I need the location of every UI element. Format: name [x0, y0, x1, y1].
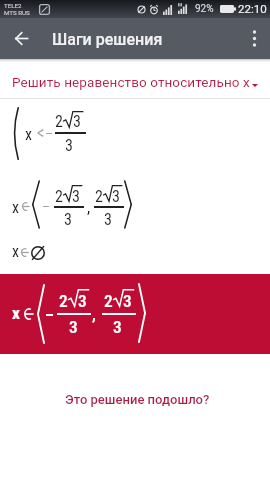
button[interactable]	[238, 20, 270, 57]
staticText: x	[12, 242, 20, 261]
staticText: 3	[112, 187, 120, 206]
staticText: 2	[95, 187, 103, 206]
staticText: TELE2	[4, 2, 22, 9]
staticText: 3	[78, 291, 87, 311]
staticText: 3	[104, 210, 112, 229]
staticText: MTS RUS	[4, 9, 30, 16]
staticText: 3	[72, 187, 80, 206]
staticText: ,	[87, 198, 91, 217]
staticText: 3	[65, 136, 73, 155]
staticText: 3	[113, 317, 122, 337]
staticText: 3	[69, 317, 78, 337]
staticText: x	[12, 303, 20, 323]
staticText: 2	[55, 187, 63, 206]
staticText: Решить неравенство относительно x	[12, 74, 250, 90]
staticText: 3	[73, 112, 81, 131]
staticText: 3	[64, 210, 72, 229]
staticText: 22:10	[238, 2, 267, 16]
staticText: Шаги решения	[52, 30, 163, 49]
staticText: 2	[59, 291, 68, 311]
staticText: 3	[123, 291, 132, 311]
staticText: Это решение подошло?	[65, 392, 210, 407]
button[interactable]	[3, 20, 39, 57]
staticText: 2	[55, 112, 63, 131]
staticText: 92%	[195, 3, 214, 15]
staticText: 2	[104, 291, 113, 311]
staticText: x	[25, 125, 33, 144]
staticText: x	[12, 198, 20, 217]
button[interactable]	[0, 66, 270, 95]
button[interactable]	[0, 274, 270, 354]
button[interactable]	[0, 388, 270, 412]
staticText: ,	[92, 304, 96, 324]
